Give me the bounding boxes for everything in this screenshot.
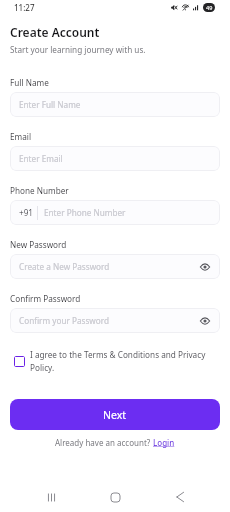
staticText: Confirm your Password [19,315,110,326]
staticText: Next [103,408,127,422]
button[interactable]: Home [98,480,132,512]
staticText: 49 [206,4,213,11]
staticText: Confirm Password [10,293,81,304]
button[interactable]: Enter Full Name [10,92,220,117]
staticText: Email [10,131,32,142]
button[interactable]: Confirm your Password [10,308,220,333]
staticText: +91 [19,207,34,218]
staticText: Enter Phone Number [44,207,126,218]
staticText: I agree to the Terms & Conditions and Pr… [30,349,220,374]
button[interactable]: Recent apps [34,480,68,512]
button[interactable]: Show password [199,315,210,326]
staticText: Create Account [10,24,100,40]
button[interactable]: Show password [199,261,210,272]
staticText: 11:27 [14,2,35,13]
staticText: New Password [10,239,67,250]
staticText: Create a New Password [19,261,110,272]
staticText: Enter Email [19,153,63,164]
staticText: Enter Full Name [19,99,81,110]
button[interactable]: Enter Email [10,146,220,171]
button[interactable]: I agree to the Terms & Conditions and Pr… [10,349,220,374]
button[interactable]: Login [153,437,175,448]
button[interactable]: Back [162,480,196,512]
button[interactable]: Create a New Password [10,254,220,279]
staticText: Phone Number [10,185,69,196]
staticText: Full Name [10,77,49,88]
staticText: Already have an account? [55,437,153,448]
button[interactable]: Next [10,399,220,430]
button[interactable]: +91 [10,200,220,225]
staticText: Start your learning journey with us. [10,44,146,55]
